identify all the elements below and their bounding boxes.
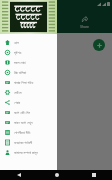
button[interactable]: আমাদের সম্পর্কে জানুন — [0, 147, 57, 157]
staticText: নামাজ শিক্ষা গাইড — [14, 80, 34, 85]
button[interactable]: নামাজ শিক্ষা গাইড — [0, 77, 57, 87]
button[interactable]: গোপনীয়তা নীতি — [0, 127, 57, 137]
button[interactable]: ব্যবহারের শর্তাবলী — [0, 137, 57, 147]
staticText: গোপনীয়তা নীতি — [14, 130, 31, 135]
staticText: ব্যবহারের শর্তাবলী — [14, 140, 33, 145]
staticText: সকল দোয়া — [14, 60, 26, 65]
staticText: প্রিয় তালিকা — [14, 70, 27, 75]
button[interactable]: অ্যাপ রেটিং দিন — [0, 107, 57, 117]
staticText: শেয়ার — [14, 101, 21, 104]
staticText: সেটিংস — [14, 91, 22, 94]
button[interactable]: শেয়ার — [0, 97, 57, 107]
staticText: সূচিপত্র — [14, 51, 22, 54]
staticText: অ্যাপ রেটিং দিন — [14, 110, 30, 115]
button[interactable]: Back — [17, 173, 21, 177]
button[interactable]: প্রিয় তালিকা — [0, 67, 57, 77]
button[interactable]: সেটিংস — [0, 87, 57, 97]
staticText: আমাদের সম্পর্কে জানুন — [14, 150, 38, 155]
staticText: Tab — [25, 25, 31, 29]
button[interactable]: Home — [55, 173, 59, 177]
button[interactable]: হোম — [0, 37, 57, 47]
button[interactable]: সকল দোয়া — [0, 57, 57, 67]
button[interactable]: App banner — [0, 0, 57, 34]
staticText: Share — [80, 25, 89, 29]
staticText: আরও অ্যাপ দেখুন — [14, 120, 33, 125]
button[interactable]: Share — [56, 12, 112, 33]
button[interactable]: Tab — [0, 12, 56, 33]
button[interactable]: Add — [93, 39, 105, 51]
staticText: হোম — [14, 41, 19, 44]
button[interactable]: সূচিপত্র — [0, 47, 57, 57]
button[interactable]: আরও অ্যাপ দেখুন — [0, 117, 57, 127]
